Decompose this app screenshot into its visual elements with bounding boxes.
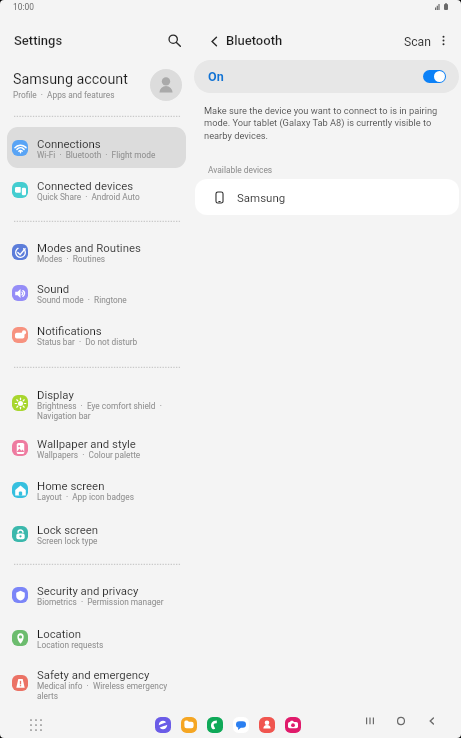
staticText: Biometrics · Permission manager bbox=[37, 597, 164, 607]
button[interactable]: Samsung bbox=[195, 179, 459, 215]
button[interactable]: Sound bbox=[7, 272, 186, 313]
staticText: Brightness · Eye comfort shield · bbox=[37, 401, 162, 411]
staticText: Notifications bbox=[37, 324, 102, 337]
staticText: Connected devices bbox=[37, 179, 134, 192]
button[interactable]: Connected devices bbox=[7, 169, 186, 210]
staticText: Available devices bbox=[208, 165, 273, 175]
staticText: Screen lock type bbox=[37, 536, 98, 546]
staticText: Navigation bar bbox=[37, 411, 91, 421]
button[interactable]: Back bbox=[203, 30, 225, 52]
staticText: Display bbox=[37, 388, 74, 401]
staticText: Make sure the device you want to connect… bbox=[204, 105, 438, 141]
staticText: Samsung bbox=[237, 191, 286, 204]
staticText: Safety and emergency bbox=[37, 668, 150, 681]
button[interactable]: Wallpaper and style bbox=[7, 427, 186, 468]
staticText: Scan bbox=[404, 35, 431, 49]
staticText: Profile · Apps and features bbox=[13, 90, 115, 100]
staticText: Sound bbox=[37, 282, 70, 295]
staticText: 10:00 bbox=[13, 2, 34, 12]
button[interactable]: On bbox=[194, 60, 459, 93]
staticText: Samsung account bbox=[13, 71, 128, 88]
button[interactable] bbox=[233, 717, 249, 733]
button[interactable] bbox=[285, 717, 301, 733]
button[interactable]: Back bbox=[427, 716, 437, 726]
button[interactable] bbox=[207, 717, 223, 733]
button[interactable] bbox=[155, 717, 171, 733]
button[interactable]: Lock screen bbox=[7, 513, 186, 554]
button[interactable]: Scan bbox=[399, 31, 436, 53]
button[interactable]: More options bbox=[433, 30, 453, 50]
button[interactable]: Notifications bbox=[7, 314, 186, 355]
button[interactable]: Recents bbox=[365, 716, 375, 726]
button[interactable]: Modes and Routines bbox=[7, 231, 186, 272]
staticText: Wi-Fi · Bluetooth · Flight mode bbox=[37, 150, 156, 160]
staticText: Location requests bbox=[37, 640, 104, 650]
staticText: Layout · App icon badges bbox=[37, 492, 134, 502]
staticText: Modes and Routines bbox=[37, 241, 141, 254]
staticText: Lock screen bbox=[37, 523, 99, 536]
button[interactable]: All apps bbox=[28, 717, 44, 733]
staticText: Security and privacy bbox=[37, 584, 139, 597]
staticText: On bbox=[208, 69, 224, 84]
staticText: Home screen bbox=[37, 479, 105, 492]
staticText: Medical info · Wireless emergency bbox=[37, 681, 168, 691]
button[interactable]: Home screen bbox=[7, 469, 186, 510]
button[interactable] bbox=[181, 717, 197, 733]
button[interactable]: Home bbox=[396, 716, 406, 726]
staticText: Status bar · Do not disturb bbox=[37, 337, 138, 347]
staticText: Modes · Routines bbox=[37, 254, 106, 264]
button[interactable] bbox=[259, 717, 275, 733]
staticText: Location bbox=[37, 627, 82, 640]
staticText: Wallpapers · Colour palette bbox=[37, 450, 141, 460]
staticText: Settings bbox=[14, 33, 63, 48]
staticText: Sound mode · Ringtone bbox=[37, 295, 127, 305]
button[interactable]: Samsung account bbox=[0, 66, 190, 104]
button[interactable]: Connections bbox=[7, 127, 186, 168]
button[interactable]: Location bbox=[7, 617, 186, 658]
button[interactable]: Security and privacy bbox=[7, 574, 186, 615]
staticText: Bluetooth bbox=[226, 33, 283, 48]
staticText: Wallpaper and style bbox=[37, 437, 136, 450]
button[interactable]: Safety and emergency bbox=[7, 659, 186, 706]
staticText: Quick Share · Android Auto bbox=[37, 192, 140, 202]
staticText: alerts bbox=[37, 691, 58, 701]
button[interactable]: Search bbox=[162, 28, 187, 53]
staticText: Connections bbox=[37, 137, 101, 150]
button[interactable]: Display bbox=[7, 379, 186, 426]
